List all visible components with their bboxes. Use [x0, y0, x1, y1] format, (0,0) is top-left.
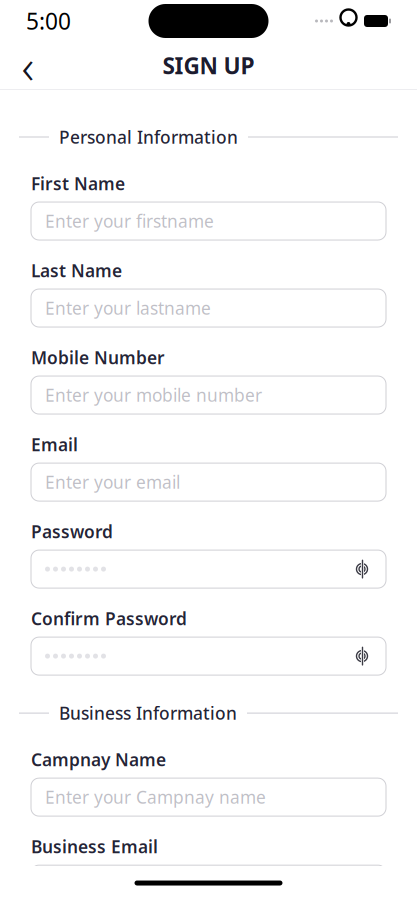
staticText: Campnay Name [31, 748, 166, 771]
staticText: Personal Information [59, 125, 238, 148]
staticText: First Name [31, 172, 125, 195]
staticText: Mobile Number [31, 346, 165, 369]
staticText: SIGN UP [162, 50, 254, 80]
staticText: Business Email [31, 835, 158, 858]
staticText: ‹ [21, 34, 34, 97]
staticText: Enter your Business Email [45, 873, 256, 896]
button[interactable]: Enter your Campnay name [31, 778, 386, 816]
staticText: Enter your lastname [45, 296, 211, 319]
button[interactable]: Back [6, 43, 50, 87]
staticText: 5:00 [26, 6, 71, 36]
staticText: Enter your mobile number [45, 383, 262, 406]
staticText: Email [31, 433, 78, 456]
button[interactable]: Enter your Business Email [31, 865, 386, 900]
staticText: Enter your firstname [45, 209, 214, 232]
staticText: Business Information [59, 702, 237, 725]
button[interactable]: Enter your lastname [31, 289, 386, 327]
button[interactable] [31, 550, 386, 588]
button[interactable]: Enter your email [31, 463, 386, 501]
staticText: Enter your Campnay name [45, 786, 266, 809]
staticText: Enter your email [45, 471, 180, 494]
staticText: Password [31, 520, 113, 543]
button[interactable]: Enter your mobile number [31, 376, 386, 414]
staticText: Last Name [31, 259, 122, 282]
staticText: Confirm Password [31, 607, 187, 630]
button[interactable] [31, 637, 386, 675]
button[interactable]: Enter your firstname [31, 202, 386, 240]
